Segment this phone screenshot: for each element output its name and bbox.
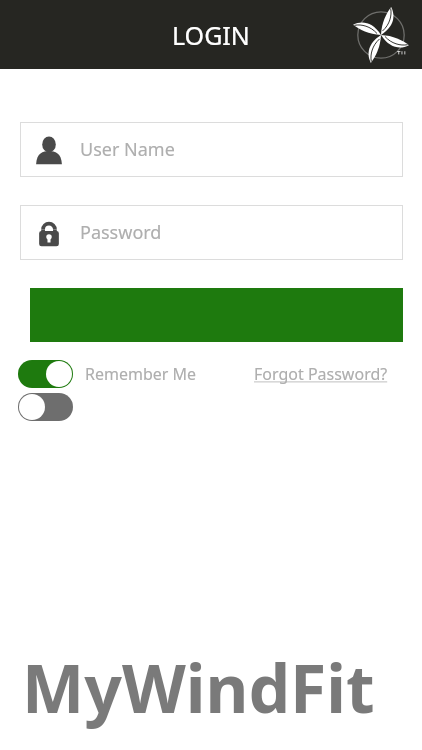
button[interactable]: Password xyxy=(20,205,403,260)
staticText: Forgot Password? xyxy=(254,363,388,385)
button[interactable]: Remember me on xyxy=(18,360,197,388)
button[interactable]: Remember me on xyxy=(18,360,73,388)
other: MyWindFit logo xyxy=(352,6,410,64)
button[interactable]: Toggle off xyxy=(18,393,73,421)
staticText: Remember Me xyxy=(85,363,197,385)
button[interactable]: User Name xyxy=(20,122,403,177)
staticText: User Name xyxy=(80,137,175,162)
button[interactable]: Forgot Password? xyxy=(254,363,388,385)
staticText: MyWindFit xyxy=(22,642,375,732)
staticText: Password xyxy=(80,220,162,245)
staticText: LOGIN xyxy=(172,18,250,52)
button[interactable]: Toggle off xyxy=(18,393,73,421)
